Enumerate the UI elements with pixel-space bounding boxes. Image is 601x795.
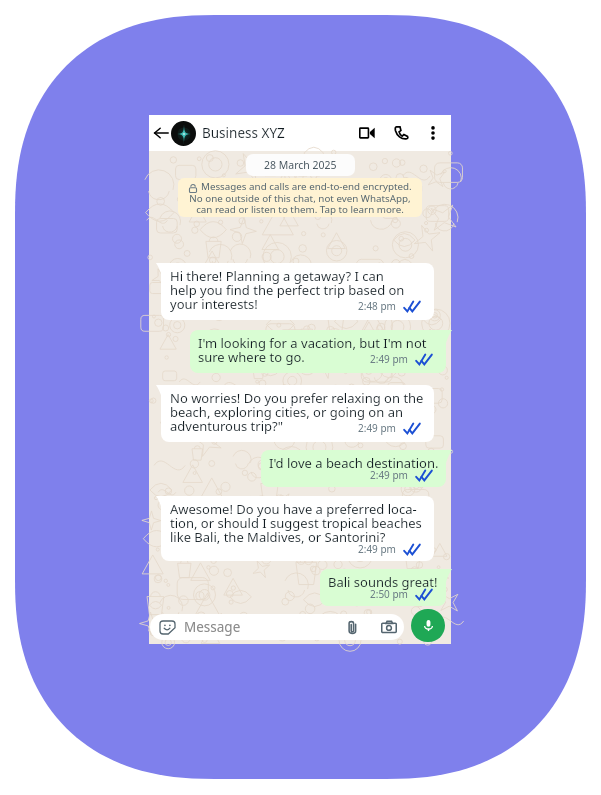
button[interactable]: Back bbox=[153, 125, 169, 141]
staticText: 2:49 pm bbox=[370, 352, 408, 366]
button[interactable]: I'm looking for a vacation, but I'm not … bbox=[190, 330, 446, 373]
staticText: 2:49 pm bbox=[358, 421, 396, 435]
staticText: I'm looking for a vacation, but I'm not … bbox=[198, 334, 427, 366]
staticText: 2:50 pm bbox=[370, 587, 408, 601]
staticText: 2:49 pm bbox=[370, 468, 408, 482]
staticText: Bali sounds great! bbox=[328, 573, 438, 591]
button[interactable]: Hi there! Planning a getaway? I can help… bbox=[161, 263, 434, 320]
staticText: 28 March 2025 bbox=[264, 158, 337, 172]
staticText: Hi there! Planning a getaway? I can help… bbox=[170, 267, 405, 313]
staticText: 2:49 pm bbox=[358, 542, 396, 556]
staticText: Message bbox=[184, 618, 241, 636]
button[interactable]: I'd love a beach destination. bbox=[261, 450, 446, 487]
button[interactable]: Message bbox=[150, 614, 404, 640]
staticText: Business XYZ bbox=[202, 124, 285, 142]
button[interactable]: Awesome! Do you have a preferred loca- t… bbox=[161, 496, 434, 561]
button[interactable]: Messages and calls are end-to-end encryp… bbox=[178, 178, 422, 217]
staticText: Awesome! Do you have a preferred loca- t… bbox=[170, 500, 422, 546]
button[interactable]: Voice call bbox=[394, 125, 409, 140]
staticText: Messages and calls are end-to-end encryp… bbox=[188, 180, 412, 216]
staticText: No worries! Do you prefer relaxing on th… bbox=[170, 389, 424, 435]
button[interactable]: 28 March 2025 bbox=[246, 154, 355, 176]
button[interactable]: Voice message bbox=[411, 609, 445, 642]
button[interactable]: Bali sounds great! bbox=[320, 569, 446, 606]
staticText: I'd love a beach destination. bbox=[269, 454, 439, 472]
button[interactable]: Video call bbox=[359, 126, 375, 140]
button[interactable]: No worries! Do you prefer relaxing on th… bbox=[161, 385, 434, 442]
staticText: 2:48 pm bbox=[358, 299, 396, 313]
button[interactable]: More options bbox=[427, 125, 439, 141]
